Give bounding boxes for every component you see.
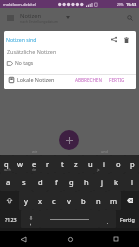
staticText: q — [4, 159, 9, 169]
staticText: a — [6, 177, 11, 187]
staticText: m — [110, 196, 118, 206]
staticText: Zusätzliche Notizen — [7, 48, 57, 55]
button[interactable]: wir — [0, 147, 69, 155]
button[interactable]: b — [76, 191, 91, 210]
button[interactable]: Back — [0, 231, 47, 247]
staticText: i — [103, 159, 105, 169]
staticText: ?123 — [5, 216, 17, 223]
staticText: l — [131, 177, 133, 187]
staticText: . — [107, 219, 109, 225]
button[interactable]: q — [0, 155, 13, 173]
staticText: ja — [97, 168, 100, 172]
button[interactable]: u — [83, 155, 97, 173]
button[interactable]: y — [19, 191, 33, 210]
button[interactable]: z — [69, 155, 83, 173]
button[interactable]: Home — [47, 231, 93, 247]
staticText: z — [74, 159, 78, 169]
button[interactable]: k — [109, 173, 124, 191]
staticText: h — [84, 177, 89, 187]
button[interactable]: ?123 — [0, 210, 21, 228]
staticText: v — [67, 196, 71, 206]
button[interactable]: w — [13, 155, 27, 173]
button[interactable]: x — [33, 191, 47, 210]
staticText: die — [32, 168, 37, 172]
button[interactable]: a — [0, 173, 16, 191]
button[interactable]: ABBRECHEN — [73, 74, 104, 85]
button[interactable]: Recent apps — [93, 231, 139, 247]
staticText: No tags — [15, 60, 34, 67]
staticText: x — [38, 196, 43, 206]
staticText: r — [46, 159, 50, 169]
staticText: f — [55, 177, 58, 187]
staticText: FERTIG — [109, 77, 125, 82]
staticText: ABBRECHEN — [75, 77, 102, 82]
button[interactable]: Space — [40, 210, 99, 228]
staticText: nach Erstellungsdatum — [20, 19, 58, 24]
staticText: auch — [4, 168, 11, 172]
staticText: Lokale Notizen — [17, 76, 55, 83]
staticText: g — [69, 177, 74, 187]
button[interactable]: d — [32, 173, 48, 191]
staticText: wir — [32, 149, 38, 154]
staticText: o — [116, 159, 121, 169]
staticText: Notizen sind — [6, 36, 37, 43]
staticText: e — [32, 159, 37, 169]
staticText: mobilcom-debitel — [3, 2, 36, 7]
staticText: c — [52, 196, 56, 206]
button[interactable]: s — [16, 173, 32, 191]
button[interactable]: h — [79, 173, 94, 191]
button[interactable]: m — [106, 191, 121, 210]
staticText: 15:53 — [126, 2, 137, 7]
button[interactable]: p — [125, 155, 139, 173]
button[interactable]: Share — [107, 33, 120, 46]
staticText: t — [61, 159, 64, 169]
button[interactable]: r — [41, 155, 55, 173]
button[interactable]: g — [64, 173, 79, 191]
staticText: w — [17, 159, 23, 169]
button[interactable]: Lokale Notizen — [4, 76, 55, 83]
button[interactable]: FERTIG — [104, 74, 127, 85]
button[interactable]: j — [94, 173, 109, 191]
staticText: 29% — [117, 3, 124, 7]
staticText: , — [30, 220, 32, 226]
button[interactable]: Open navigation menu — [3, 11, 17, 25]
staticText: Fertig — [120, 216, 135, 223]
button[interactable]: Shift — [0, 191, 19, 210]
button[interactable]: e — [27, 155, 41, 173]
staticText: Notizen — [20, 12, 42, 20]
button[interactable]: t — [55, 155, 69, 173]
staticText: d — [38, 177, 43, 187]
button[interactable]: New note — [59, 130, 79, 150]
button[interactable]: No tags — [4, 57, 136, 69]
button[interactable]: i — [97, 155, 111, 173]
staticText: n — [96, 196, 101, 206]
button[interactable]: o — [111, 155, 125, 173]
button[interactable]: f — [48, 173, 64, 191]
button[interactable]: Backspace — [121, 191, 139, 210]
staticText: b — [81, 196, 86, 206]
button[interactable]: n — [91, 191, 106, 210]
button[interactable]: Period — [99, 210, 116, 228]
staticText: und — [101, 149, 108, 154]
button[interactable]: Delete — [120, 33, 133, 46]
staticText: s — [22, 177, 26, 187]
button[interactable]: Search — [123, 11, 137, 25]
button[interactable]: l — [124, 173, 139, 191]
button[interactable]: Comma and voice input — [21, 210, 40, 228]
button[interactable]: Fertig — [116, 210, 139, 228]
staticText: j — [101, 177, 103, 187]
staticText: y — [24, 196, 28, 206]
button[interactable]: v — [61, 191, 76, 210]
staticText: p — [130, 159, 135, 169]
button[interactable]: c — [47, 191, 61, 210]
staticText: k — [114, 177, 119, 187]
button[interactable]: und — [69, 147, 139, 155]
staticText: u — [88, 159, 93, 169]
